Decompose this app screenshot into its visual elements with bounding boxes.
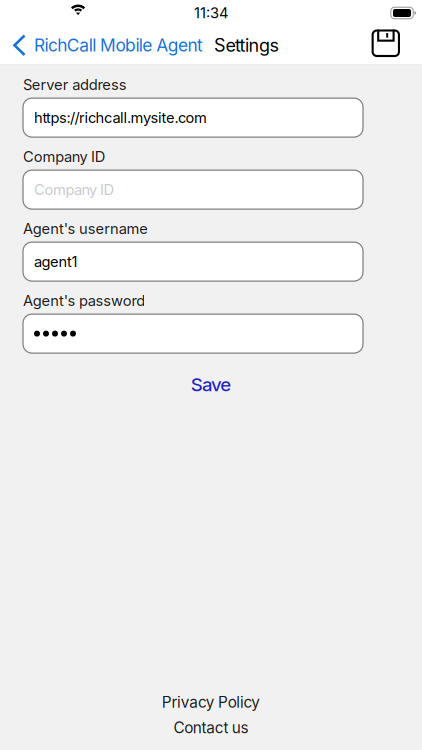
- staticText: Save: [191, 373, 231, 396]
- button[interactable]: Privacy Policy: [162, 692, 260, 712]
- staticText: Contact us: [174, 718, 248, 737]
- button[interactable]: Contact us: [174, 717, 248, 738]
- button[interactable]: Save: [0, 367, 422, 402]
- button[interactable]: Save settings: [362, 28, 422, 62]
- staticText: https://richcall.mysite.com: [34, 109, 207, 126]
- staticText: Company ID: [34, 181, 114, 198]
- staticText: Server address: [23, 76, 127, 93]
- staticText: Settings: [214, 34, 279, 56]
- staticText: Privacy Policy: [162, 693, 260, 711]
- staticText: 11:34: [194, 4, 228, 22]
- button[interactable]: RichCall Mobile Agent: [0, 28, 203, 62]
- staticText: agent1: [34, 253, 77, 270]
- staticText: Agent's username: [23, 220, 148, 237]
- staticText: RichCall Mobile Agent: [34, 35, 203, 56]
- staticText: Agent's password: [23, 292, 145, 309]
- staticText: Company ID: [23, 148, 106, 165]
